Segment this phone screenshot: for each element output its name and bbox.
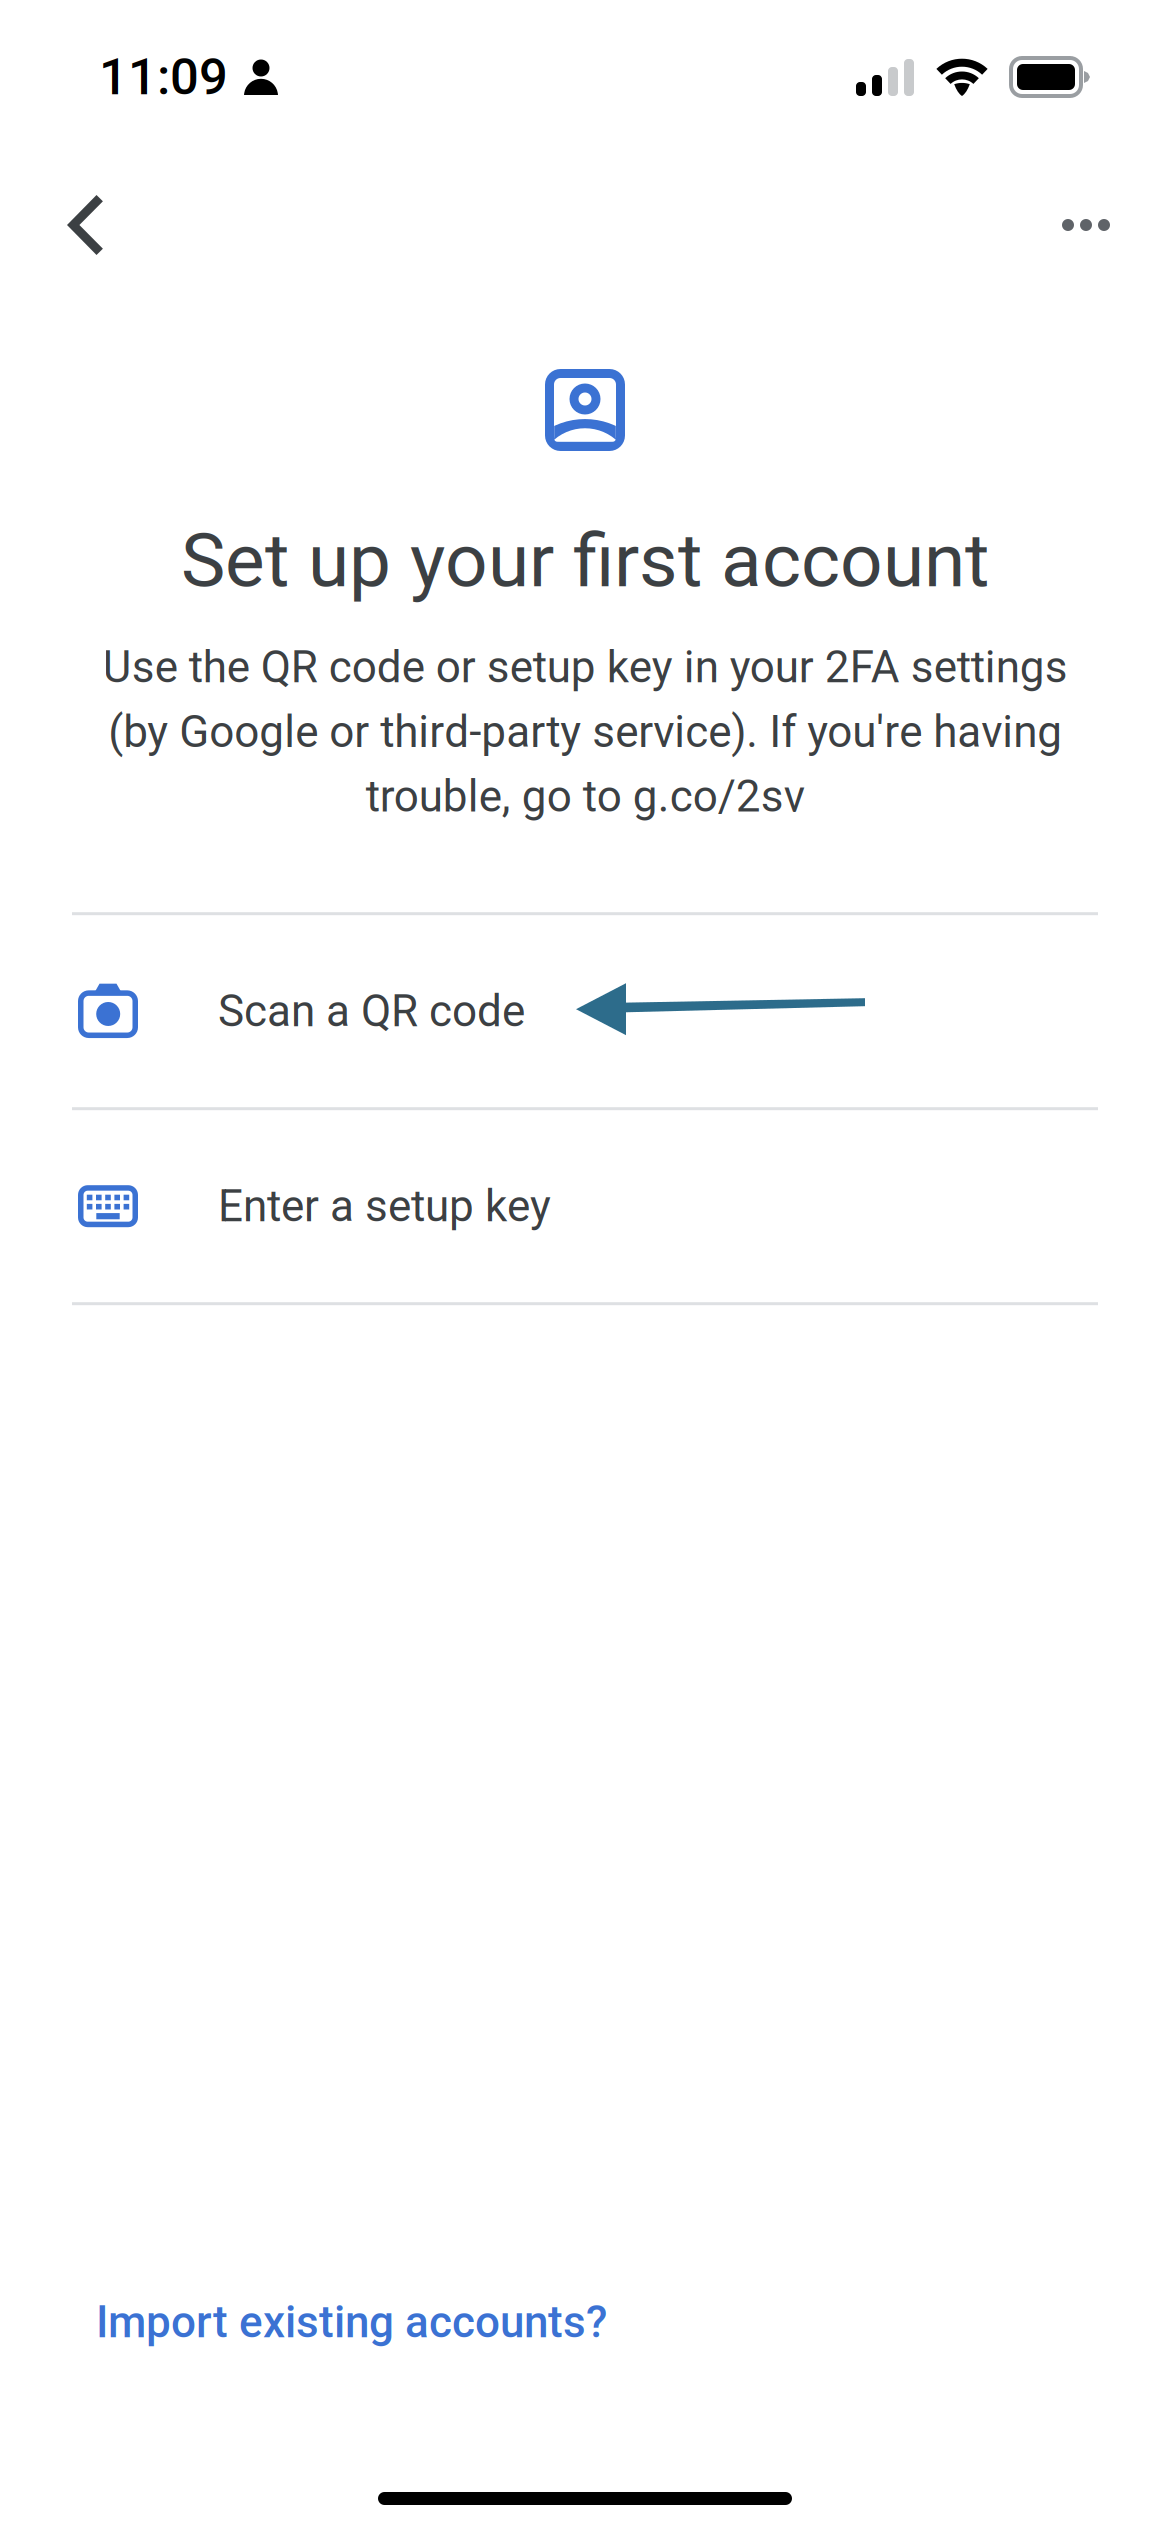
button[interactable]: Enter a setup key bbox=[0, 1110, 1170, 1302]
staticText: Set up your first account bbox=[181, 517, 989, 604]
staticText: Scan a QR code bbox=[218, 985, 525, 1037]
staticText: Use the QR code or setup key in your 2FA… bbox=[102, 641, 1067, 822]
button[interactable]: Scan a QR code bbox=[0, 915, 1170, 1107]
staticText: Enter a setup key bbox=[218, 1180, 551, 1232]
button[interactable]: More options bbox=[1034, 173, 1138, 277]
button[interactable]: Import existing accounts? bbox=[0, 2268, 647, 2376]
staticText: 11:09 bbox=[99, 47, 228, 107]
staticText: Import existing accounts? bbox=[96, 2296, 607, 2348]
button[interactable]: Back bbox=[33, 173, 137, 277]
